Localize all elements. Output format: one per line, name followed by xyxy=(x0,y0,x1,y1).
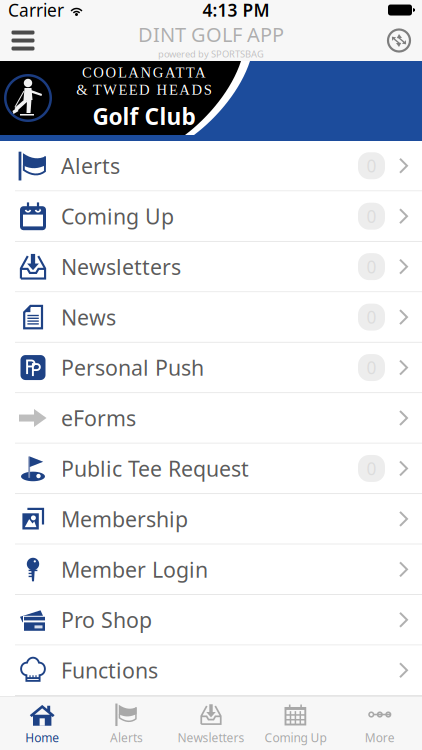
button[interactable]: eForms xyxy=(0,393,422,444)
button[interactable]: News xyxy=(0,292,422,343)
staticText: 0 xyxy=(366,154,376,177)
staticText: Functions xyxy=(61,656,158,684)
staticText: More xyxy=(365,729,395,745)
button[interactable]: Coming Up xyxy=(253,697,338,750)
button[interactable]: Alerts xyxy=(84,697,169,750)
staticText: Alerts xyxy=(61,152,120,180)
staticText: Member Login xyxy=(61,555,208,583)
staticText: Carrier xyxy=(8,0,64,21)
staticText: eForms xyxy=(61,404,136,432)
staticText: Pro Shop xyxy=(61,606,152,634)
button[interactable]: Refresh xyxy=(376,20,422,60)
staticText: Alerts xyxy=(110,729,143,745)
button[interactable]: Newsletters xyxy=(169,697,253,750)
button[interactable]: Membership xyxy=(0,494,422,545)
staticText: 4:13 PM xyxy=(202,0,269,21)
staticText: Personal Push xyxy=(61,353,204,382)
button[interactable]: Home xyxy=(0,697,84,750)
button[interactable]: Personal Push xyxy=(0,343,422,393)
staticText: Golf Club xyxy=(92,101,195,132)
button[interactable]: Coming Up xyxy=(0,191,422,242)
staticText: COOLANGATTA xyxy=(82,64,206,80)
button[interactable]: Pro Shop xyxy=(0,595,422,645)
staticText: Newsletters xyxy=(177,729,244,745)
staticText: Coming Up xyxy=(264,729,326,745)
staticText: & TWEED HEADS xyxy=(76,82,212,98)
staticText: 0 xyxy=(366,356,376,379)
staticText: DINT GOLF APP xyxy=(138,21,284,48)
button[interactable]: Public Tee Request xyxy=(0,444,422,494)
staticText: powered by SPORTSBAG xyxy=(158,48,264,60)
button[interactable]: Functions xyxy=(0,645,422,696)
staticText: Home xyxy=(25,729,59,745)
button[interactable]: Newsletters xyxy=(0,242,422,292)
staticText: News xyxy=(61,303,116,331)
staticText: Membership xyxy=(61,505,188,533)
staticText: 0 xyxy=(366,205,376,228)
button[interactable]: Menu xyxy=(0,20,46,60)
button[interactable]: Member Login xyxy=(0,545,422,595)
staticText: 0 xyxy=(366,255,376,278)
staticText: Newsletters xyxy=(61,252,181,281)
staticText: 0 xyxy=(366,457,376,480)
staticText: Coming Up xyxy=(61,202,174,230)
staticText: Public Tee Request xyxy=(61,454,249,483)
staticText: 0 xyxy=(366,306,376,329)
button[interactable]: Alerts xyxy=(0,141,422,191)
button[interactable]: More xyxy=(338,697,422,750)
